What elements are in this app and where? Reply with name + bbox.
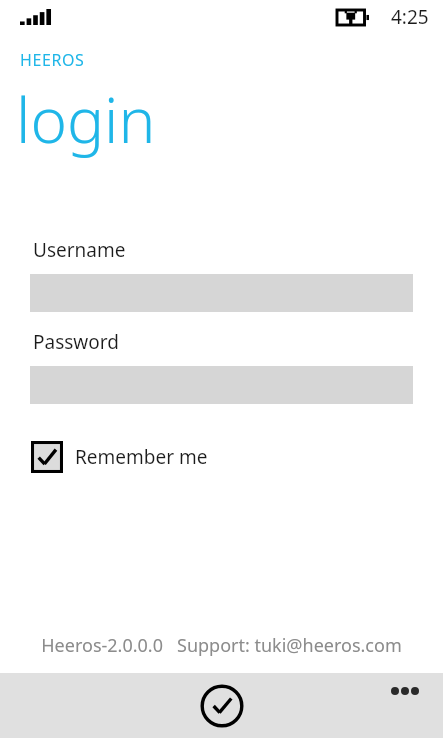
staticText: login [16,77,156,161]
button[interactable]: Accept [200,684,244,728]
staticText: Username [33,237,126,263]
staticText: Heeros-2.0.0.0 Support: tuki@heeros.com [0,633,443,658]
staticText: Password [33,329,119,355]
staticText: 4:25 [391,4,429,30]
staticText: HEEROS [20,49,85,71]
staticText: Remember me [75,444,208,470]
button[interactable]: More options [385,677,425,705]
button[interactable]: Remember me [31,440,208,474]
